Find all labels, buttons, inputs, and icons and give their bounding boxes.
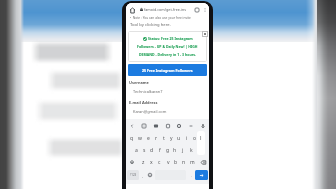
button[interactable]: k: [188, 144, 194, 156]
staticText: r: [155, 135, 158, 142]
staticText: f: [159, 147, 161, 154]
button[interactable]: More options: [201, 6, 208, 13]
staticText: d: [150, 147, 154, 154]
button[interactable]: z: [140, 156, 146, 168]
button[interactable]: p: [200, 133, 206, 144]
staticText: z: [142, 159, 145, 166]
button[interactable]: ,: [139, 170, 146, 180]
button[interactable]: n: [181, 156, 187, 168]
staticText: l: [200, 134, 202, 142]
button[interactable]: Shift: [126, 156, 137, 168]
button[interactable]: Enter: [195, 170, 208, 180]
staticText: Status: Free 25 Instagram: [148, 36, 193, 41]
staticText: ?123: [130, 173, 137, 177]
staticText: c: [158, 159, 161, 166]
staticText: t: [163, 135, 165, 142]
staticText: w: [138, 135, 142, 142]
button[interactable]: w: [137, 133, 143, 144]
button[interactable]: b: [173, 156, 179, 168]
button[interactable]: Close: [202, 31, 208, 37]
button[interactable]: u: [176, 133, 182, 144]
staticText: Tool by clicking here.: [130, 22, 171, 28]
button[interactable]: m: [189, 156, 195, 168]
button[interactable]: g: [165, 144, 171, 156]
button[interactable]: y: [168, 133, 174, 144]
button[interactable]: Clipboard: [164, 122, 172, 130]
button[interactable]: More: [187, 122, 195, 130]
staticText: Username: [129, 80, 149, 85]
staticText: q: [130, 135, 134, 142]
button[interactable]: Backspace: [198, 156, 209, 168]
button[interactable]: Tabs: [193, 6, 201, 14]
button[interactable]: r: [153, 133, 159, 144]
staticText: m: [190, 159, 195, 166]
staticText: i: [186, 135, 188, 142]
button[interactable]: h: [172, 144, 178, 156]
staticText: Karan@gmail.com: [133, 109, 167, 114]
button[interactable]: l: [196, 144, 202, 156]
button[interactable]: Settings: [175, 122, 183, 130]
button[interactable]: e: [145, 133, 151, 144]
staticText: x: [150, 159, 153, 166]
button[interactable]: GIF: [152, 122, 160, 130]
staticText: ,: [142, 173, 143, 178]
staticText: e: [147, 135, 150, 142]
staticText: v: [167, 159, 170, 166]
button[interactable]: Home: [128, 6, 136, 14]
staticText: Followers - UP & Daily New! | HIGH: [137, 44, 198, 49]
button[interactable]: Emoji: [146, 170, 154, 180]
staticText: E-mail Address: [129, 100, 158, 105]
button[interactable]: s: [141, 144, 147, 156]
staticText: u: [177, 135, 181, 142]
staticText: h: [173, 147, 177, 154]
button[interactable]: f: [157, 144, 163, 156]
button[interactable]: q: [129, 133, 135, 144]
staticText: y: [170, 135, 173, 142]
staticText: k: [190, 147, 193, 154]
staticText: famoid.com/get-free-ins: [144, 7, 186, 12]
staticText: Technicalkaran7: [133, 89, 163, 94]
button[interactable]: i: [184, 133, 190, 144]
button[interactable]: t: [161, 133, 167, 144]
button[interactable]: d: [149, 144, 155, 156]
staticText: .: [191, 173, 192, 178]
button[interactable]: ?123: [127, 170, 139, 180]
staticText: o: [193, 135, 197, 142]
button[interactable]: x: [148, 156, 154, 168]
staticText: n: [182, 159, 186, 166]
staticText: 25 Free Instagram Followers: [142, 68, 193, 73]
button[interactable]: o: [192, 133, 198, 144]
button[interactable]: Back: [128, 122, 136, 130]
button[interactable]: j: [180, 144, 186, 156]
staticText: a: [135, 147, 138, 154]
button[interactable]: a: [133, 144, 139, 156]
staticText: b: [174, 159, 178, 166]
staticText: j: [182, 147, 184, 154]
button[interactable]: Stickers: [140, 122, 148, 130]
button[interactable]: Voice: [199, 122, 207, 130]
button[interactable]: c: [156, 156, 162, 168]
button[interactable]: 25 Free Instagram Followers: [128, 64, 207, 76]
staticText: s: [143, 147, 146, 154]
staticText: DEMAND - Delivery in 1 - 3 hours.: [139, 52, 197, 57]
staticText: • Note : You can also use your free invi…: [130, 16, 191, 20]
button[interactable]: v: [165, 156, 171, 168]
staticText: g: [166, 147, 170, 154]
